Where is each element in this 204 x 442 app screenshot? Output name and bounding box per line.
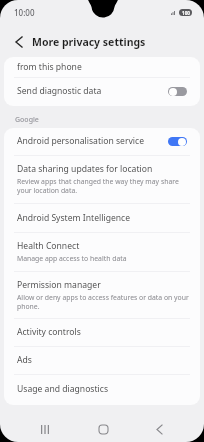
button[interactable]: Toggle on — [168, 137, 187, 146]
button[interactable]: Back — [145, 415, 173, 442]
staticText: from this phone — [17, 61, 82, 73]
staticText: Health Connect — [17, 240, 80, 252]
staticText: Manage app access to health data — [17, 254, 127, 263]
button[interactable]: Recent apps — [31, 415, 59, 442]
button[interactable]: Home — [89, 415, 117, 442]
staticText: Send diagnostic data — [17, 85, 102, 97]
staticText: Usage and diagnostics — [17, 383, 109, 395]
button[interactable]: Activity controls — [4, 319, 200, 347]
button[interactable]: Usage and diagnostics — [4, 375, 200, 405]
staticText: Data sharing updates for location — [17, 163, 153, 175]
staticText: Activity controls — [17, 326, 81, 338]
staticText: Review apps that changed the way they ma… — [17, 177, 190, 195]
button[interactable]: Toggle off — [168, 87, 187, 96]
staticText: Permission manager — [17, 279, 101, 291]
button[interactable]: Ads — [4, 347, 200, 375]
button[interactable]: Data sharing updates for location — [4, 156, 200, 204]
button[interactable]: Health Connect — [4, 233, 200, 272]
staticText: Google — [15, 115, 39, 125]
staticText: Android System Intelligence — [17, 212, 131, 224]
staticText: Allow or deny apps to access features or… — [17, 293, 190, 311]
button[interactable]: Android System Intelligence — [4, 204, 200, 233]
button[interactable]: Send diagnostic data — [4, 78, 200, 106]
staticText: Ads — [17, 354, 32, 366]
staticText: Android personalisation service — [17, 135, 145, 147]
staticText: 100 — [182, 10, 190, 16]
button[interactable]: Android personalisation service — [4, 128, 200, 156]
button[interactable]: Back — [9, 32, 28, 51]
button[interactable]: Permission manager — [4, 272, 200, 319]
staticText: More privacy settings — [32, 35, 146, 49]
staticText: 10:00 — [14, 7, 35, 18]
button[interactable]: from this phone — [4, 57, 200, 78]
